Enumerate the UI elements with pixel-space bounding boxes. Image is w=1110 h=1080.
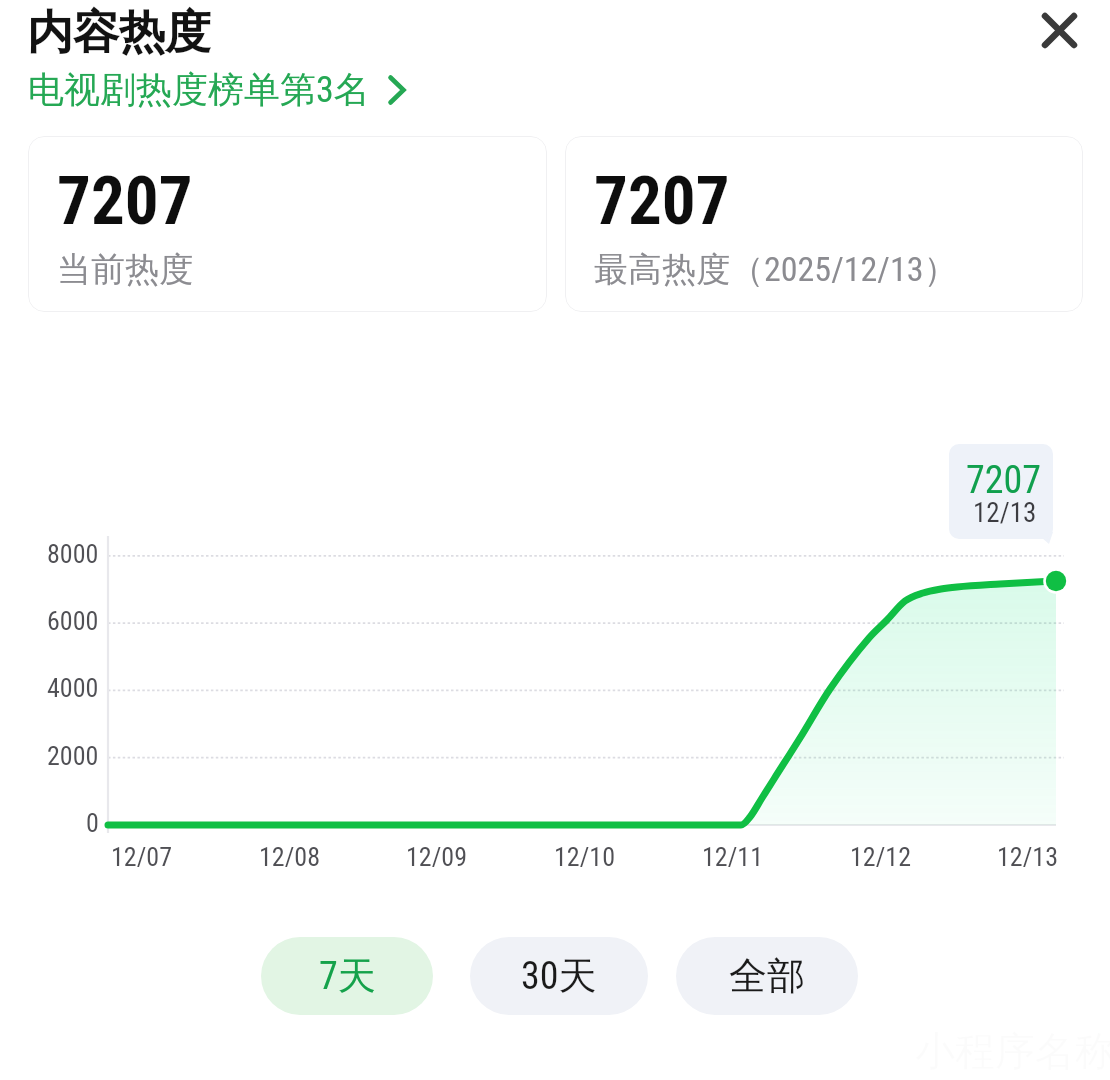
staticText: 最高热度（2025/12/13） bbox=[594, 248, 958, 291]
staticText: 6000 bbox=[47, 606, 99, 636]
staticText: 7207 bbox=[966, 458, 1042, 503]
button[interactable]: 7天 bbox=[261, 937, 433, 1015]
staticText: 12/08 bbox=[259, 842, 320, 872]
staticText: 12/09 bbox=[406, 842, 467, 872]
button[interactable]: 7207 bbox=[565, 136, 1083, 312]
staticText: 4000 bbox=[47, 673, 99, 703]
staticText: 12/13 bbox=[997, 842, 1058, 872]
staticText: 0 bbox=[86, 808, 99, 838]
staticText: 2000 bbox=[47, 741, 99, 771]
button[interactable]: 30天 bbox=[470, 937, 648, 1015]
button[interactable]: 电视剧热度榜单第3名 bbox=[28, 67, 406, 112]
staticText: 12/13 bbox=[973, 497, 1037, 529]
staticText: 12/07 bbox=[111, 842, 172, 872]
staticText: 7天 bbox=[319, 952, 376, 1000]
staticText: 全部 bbox=[729, 952, 805, 1000]
staticText: 12/12 bbox=[850, 842, 911, 872]
staticText: 内容热度 bbox=[27, 4, 211, 62]
button[interactable]: Close bbox=[1023, 0, 1095, 66]
staticText: 7207 bbox=[57, 162, 193, 241]
staticText: 7207 bbox=[594, 162, 730, 241]
button[interactable]: 全部 bbox=[676, 937, 858, 1015]
staticText: 当前热度 bbox=[57, 248, 193, 291]
staticText: 12/10 bbox=[554, 842, 615, 872]
staticText: 8000 bbox=[47, 539, 99, 569]
staticText: 电视剧热度榜单第3名 bbox=[28, 67, 370, 112]
staticText: 12/11 bbox=[702, 842, 763, 872]
button[interactable]: 7207 bbox=[28, 136, 547, 312]
staticText: 30天 bbox=[521, 952, 597, 1000]
